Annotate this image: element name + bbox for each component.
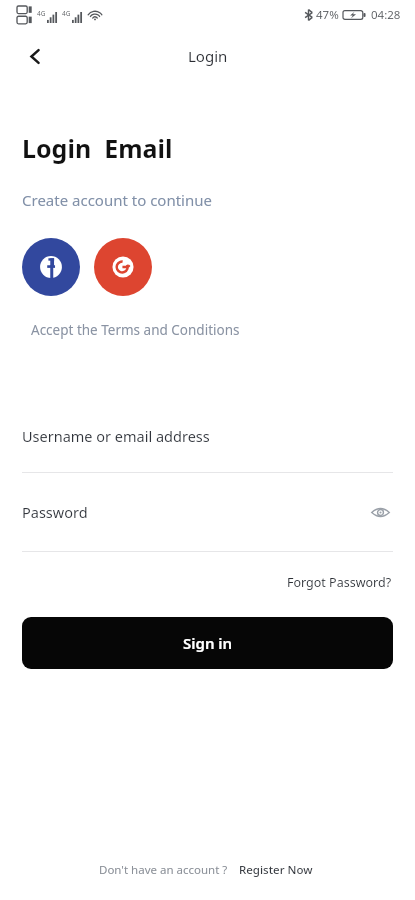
staticText: Login Email bbox=[22, 131, 173, 165]
staticText: Register Now bbox=[239, 862, 313, 878]
staticText: Sign in bbox=[183, 633, 233, 653]
staticText: 47% bbox=[316, 7, 339, 23]
staticText: Create account to continue bbox=[22, 190, 212, 210]
staticText: 04:28 bbox=[371, 7, 401, 23]
button[interactable]: Accept the Terms and Conditions bbox=[26, 318, 245, 342]
staticText: Username or email address bbox=[22, 426, 393, 446]
staticText: Login bbox=[188, 46, 228, 66]
button[interactable]: Password bbox=[22, 499, 393, 525]
button[interactable]: Sign in with Facebook bbox=[22, 238, 80, 296]
staticText: 4G bbox=[37, 9, 46, 18]
button[interactable]: Back bbox=[14, 35, 56, 77]
staticText: 4G bbox=[62, 9, 71, 18]
staticText: Accept the Terms and Conditions bbox=[31, 321, 240, 339]
staticText: Password bbox=[22, 502, 367, 522]
staticText: Don't have an account ? bbox=[99, 862, 228, 878]
staticText: Forgot Password? bbox=[287, 574, 392, 591]
button[interactable]: Register Now bbox=[236, 860, 316, 880]
button[interactable]: Show password bbox=[367, 499, 393, 525]
button[interactable]: Sign in with Google bbox=[94, 238, 152, 296]
button[interactable]: Sign in bbox=[22, 617, 393, 669]
button[interactable]: Username or email address bbox=[22, 426, 393, 446]
button[interactable]: Forgot Password? bbox=[281, 570, 398, 595]
